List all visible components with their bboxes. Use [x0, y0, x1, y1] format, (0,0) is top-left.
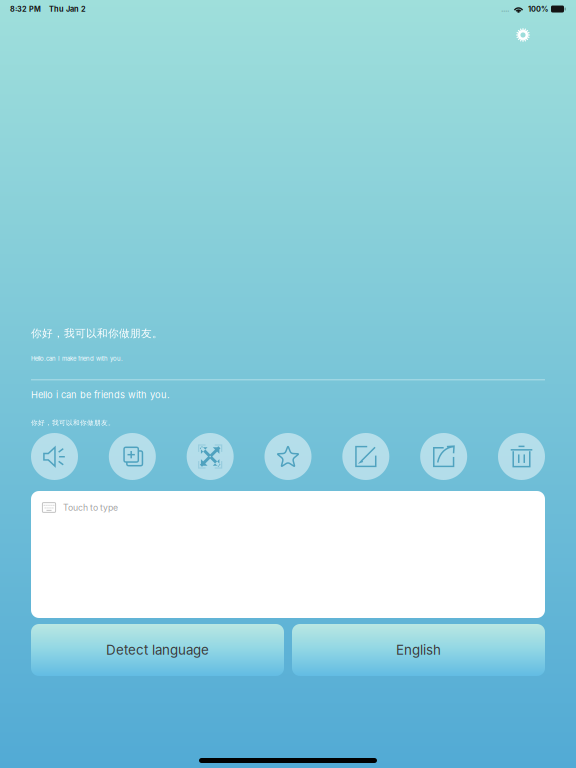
- button[interactable]: Touch to type: [31, 491, 545, 618]
- staticText: ....: [501, 5, 509, 13]
- button[interactable]: Favourite: [264, 433, 311, 480]
- staticText: 100%: [528, 5, 548, 13]
- button[interactable]: Settings: [506, 18, 540, 52]
- staticText: 你好，我可以和你做朋友。: [31, 419, 115, 427]
- staticText: Touch to type: [63, 502, 118, 513]
- button[interactable]: Edit: [342, 433, 389, 480]
- staticText: 你好，我可以和你做朋友。: [31, 327, 163, 340]
- button[interactable]: Speak: [31, 433, 78, 480]
- staticText: Hello i can be friends with you.: [31, 389, 170, 401]
- staticText: 8:32 PM: [10, 5, 41, 13]
- button[interactable]: Detect language: [31, 624, 284, 676]
- button[interactable]: English: [292, 624, 545, 676]
- button[interactable]: Share: [420, 433, 467, 480]
- staticText: Hello.can I make friend with you.: [31, 355, 123, 362]
- button[interactable]: Add to phrasebook: [109, 433, 156, 480]
- button[interactable]: Delete: [498, 433, 545, 480]
- staticText: Detect language: [106, 642, 209, 658]
- staticText: English: [396, 642, 441, 658]
- staticText: Thu Jan 2: [49, 5, 86, 13]
- button[interactable]: Full screen: [187, 433, 234, 480]
